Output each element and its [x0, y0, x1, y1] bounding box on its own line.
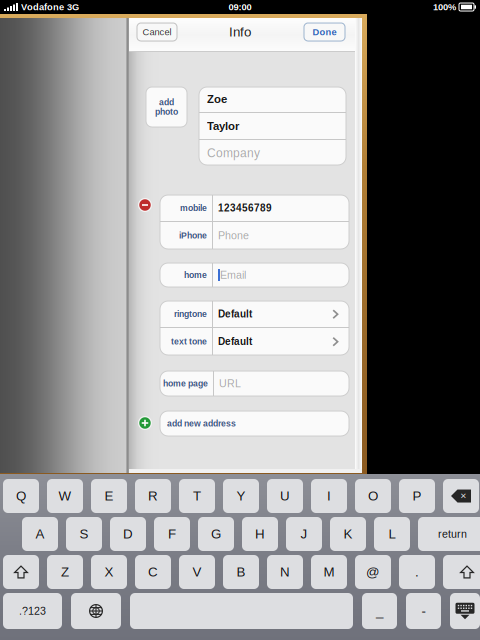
staticText: L: [388, 527, 395, 541]
staticText: add: [159, 97, 174, 107]
button[interactable]: S: [66, 517, 102, 551]
staticText: Taylor: [207, 120, 239, 132]
button[interactable]: _: [362, 593, 397, 629]
staticText: add new address: [167, 419, 236, 428]
button[interactable]: L: [374, 517, 410, 551]
staticText: Y: [236, 489, 245, 503]
staticText: Default: [218, 308, 252, 320]
button[interactable]: return: [418, 517, 480, 551]
staticText: K: [343, 527, 352, 541]
button[interactable]: O: [355, 479, 391, 513]
button[interactable]: [130, 593, 353, 629]
button[interactable]: V: [179, 555, 215, 589]
staticText: V: [192, 565, 201, 579]
staticText: T: [193, 489, 201, 503]
staticText: M: [323, 565, 334, 579]
button[interactable]: X: [91, 555, 127, 589]
staticText: Company: [207, 146, 260, 160]
button[interactable]: Q: [3, 479, 39, 513]
staticText: Email: [220, 269, 246, 281]
staticText: ✕: [460, 491, 467, 501]
button[interactable]: K: [330, 517, 366, 551]
staticText: B: [236, 565, 245, 579]
staticText: Info: [229, 25, 251, 39]
button[interactable]: add: [146, 87, 187, 127]
staticText: text tone: [171, 337, 207, 346]
staticText: _: [376, 604, 383, 618]
button[interactable]: ✕: [443, 479, 479, 513]
button[interactable]: Y: [223, 479, 259, 513]
button[interactable]: .: [399, 555, 435, 589]
staticText: .?123: [19, 605, 46, 617]
button[interactable]: @: [355, 555, 391, 589]
staticText: mobile: [180, 203, 207, 213]
button[interactable]: M: [311, 555, 347, 589]
staticText: Q: [16, 489, 26, 503]
button[interactable]: W: [47, 479, 83, 513]
staticText: home page: [163, 379, 208, 388]
button[interactable]: P: [399, 479, 435, 513]
button[interactable]: G: [198, 517, 234, 551]
staticText: @: [366, 565, 380, 579]
staticText: X: [104, 565, 113, 579]
button[interactable]: R: [135, 479, 171, 513]
staticText: Done: [312, 27, 336, 37]
staticText: photo: [155, 107, 178, 117]
button[interactable]: B: [223, 555, 259, 589]
staticText: Cancel: [142, 27, 171, 37]
staticText: F: [168, 527, 176, 541]
button[interactable]: J: [286, 517, 322, 551]
staticText: Default: [218, 336, 252, 347]
button[interactable]: T: [179, 479, 215, 513]
button[interactable]: .?123: [3, 593, 62, 629]
button[interactable]: F: [154, 517, 190, 551]
staticText: Vodafone 3G: [21, 2, 79, 12]
staticText: W: [58, 489, 71, 503]
button[interactable]: E: [91, 479, 127, 513]
button[interactable]: N: [267, 555, 303, 589]
staticText: Z: [61, 565, 69, 579]
button[interactable]: I: [311, 479, 347, 513]
staticText: U: [280, 489, 290, 503]
button[interactable]: A: [22, 517, 58, 551]
staticText: return: [438, 528, 467, 540]
button[interactable]: [450, 593, 480, 629]
staticText: O: [368, 489, 378, 503]
staticText: Phone: [218, 229, 249, 241]
staticText: E: [104, 489, 113, 503]
button[interactable]: -: [406, 593, 441, 629]
staticText: home: [184, 270, 207, 280]
staticText: R: [148, 489, 158, 503]
staticText: URL: [219, 377, 241, 389]
staticText: 100%: [433, 2, 456, 12]
staticText: G: [211, 527, 221, 541]
staticText: -: [421, 604, 425, 618]
staticText: iPhone: [179, 231, 207, 240]
staticText: N: [280, 565, 290, 579]
staticText: P: [412, 489, 421, 503]
staticText: ringtone: [174, 309, 207, 319]
button[interactable]: add new address: [160, 411, 349, 436]
button[interactable]: D: [110, 517, 146, 551]
staticText: Zoe: [207, 93, 227, 105]
button[interactable]: [443, 555, 480, 589]
button[interactable]: Done: [304, 23, 345, 41]
staticText: 09:00: [228, 2, 251, 12]
button[interactable]: [71, 593, 121, 629]
button[interactable]: C: [135, 555, 171, 589]
button[interactable]: [3, 555, 39, 589]
button[interactable]: U: [267, 479, 303, 513]
button[interactable]: H: [242, 517, 278, 551]
staticText: .: [415, 565, 419, 579]
button[interactable]: Z: [47, 555, 83, 589]
staticText: J: [300, 527, 307, 541]
staticText: S: [79, 527, 88, 541]
staticText: H: [255, 527, 265, 541]
staticText: 123456789: [218, 202, 272, 214]
staticText: I: [327, 489, 331, 503]
button[interactable]: Cancel: [137, 23, 177, 41]
staticText: C: [148, 565, 158, 579]
staticText: A: [35, 527, 44, 541]
staticText: D: [123, 527, 133, 541]
